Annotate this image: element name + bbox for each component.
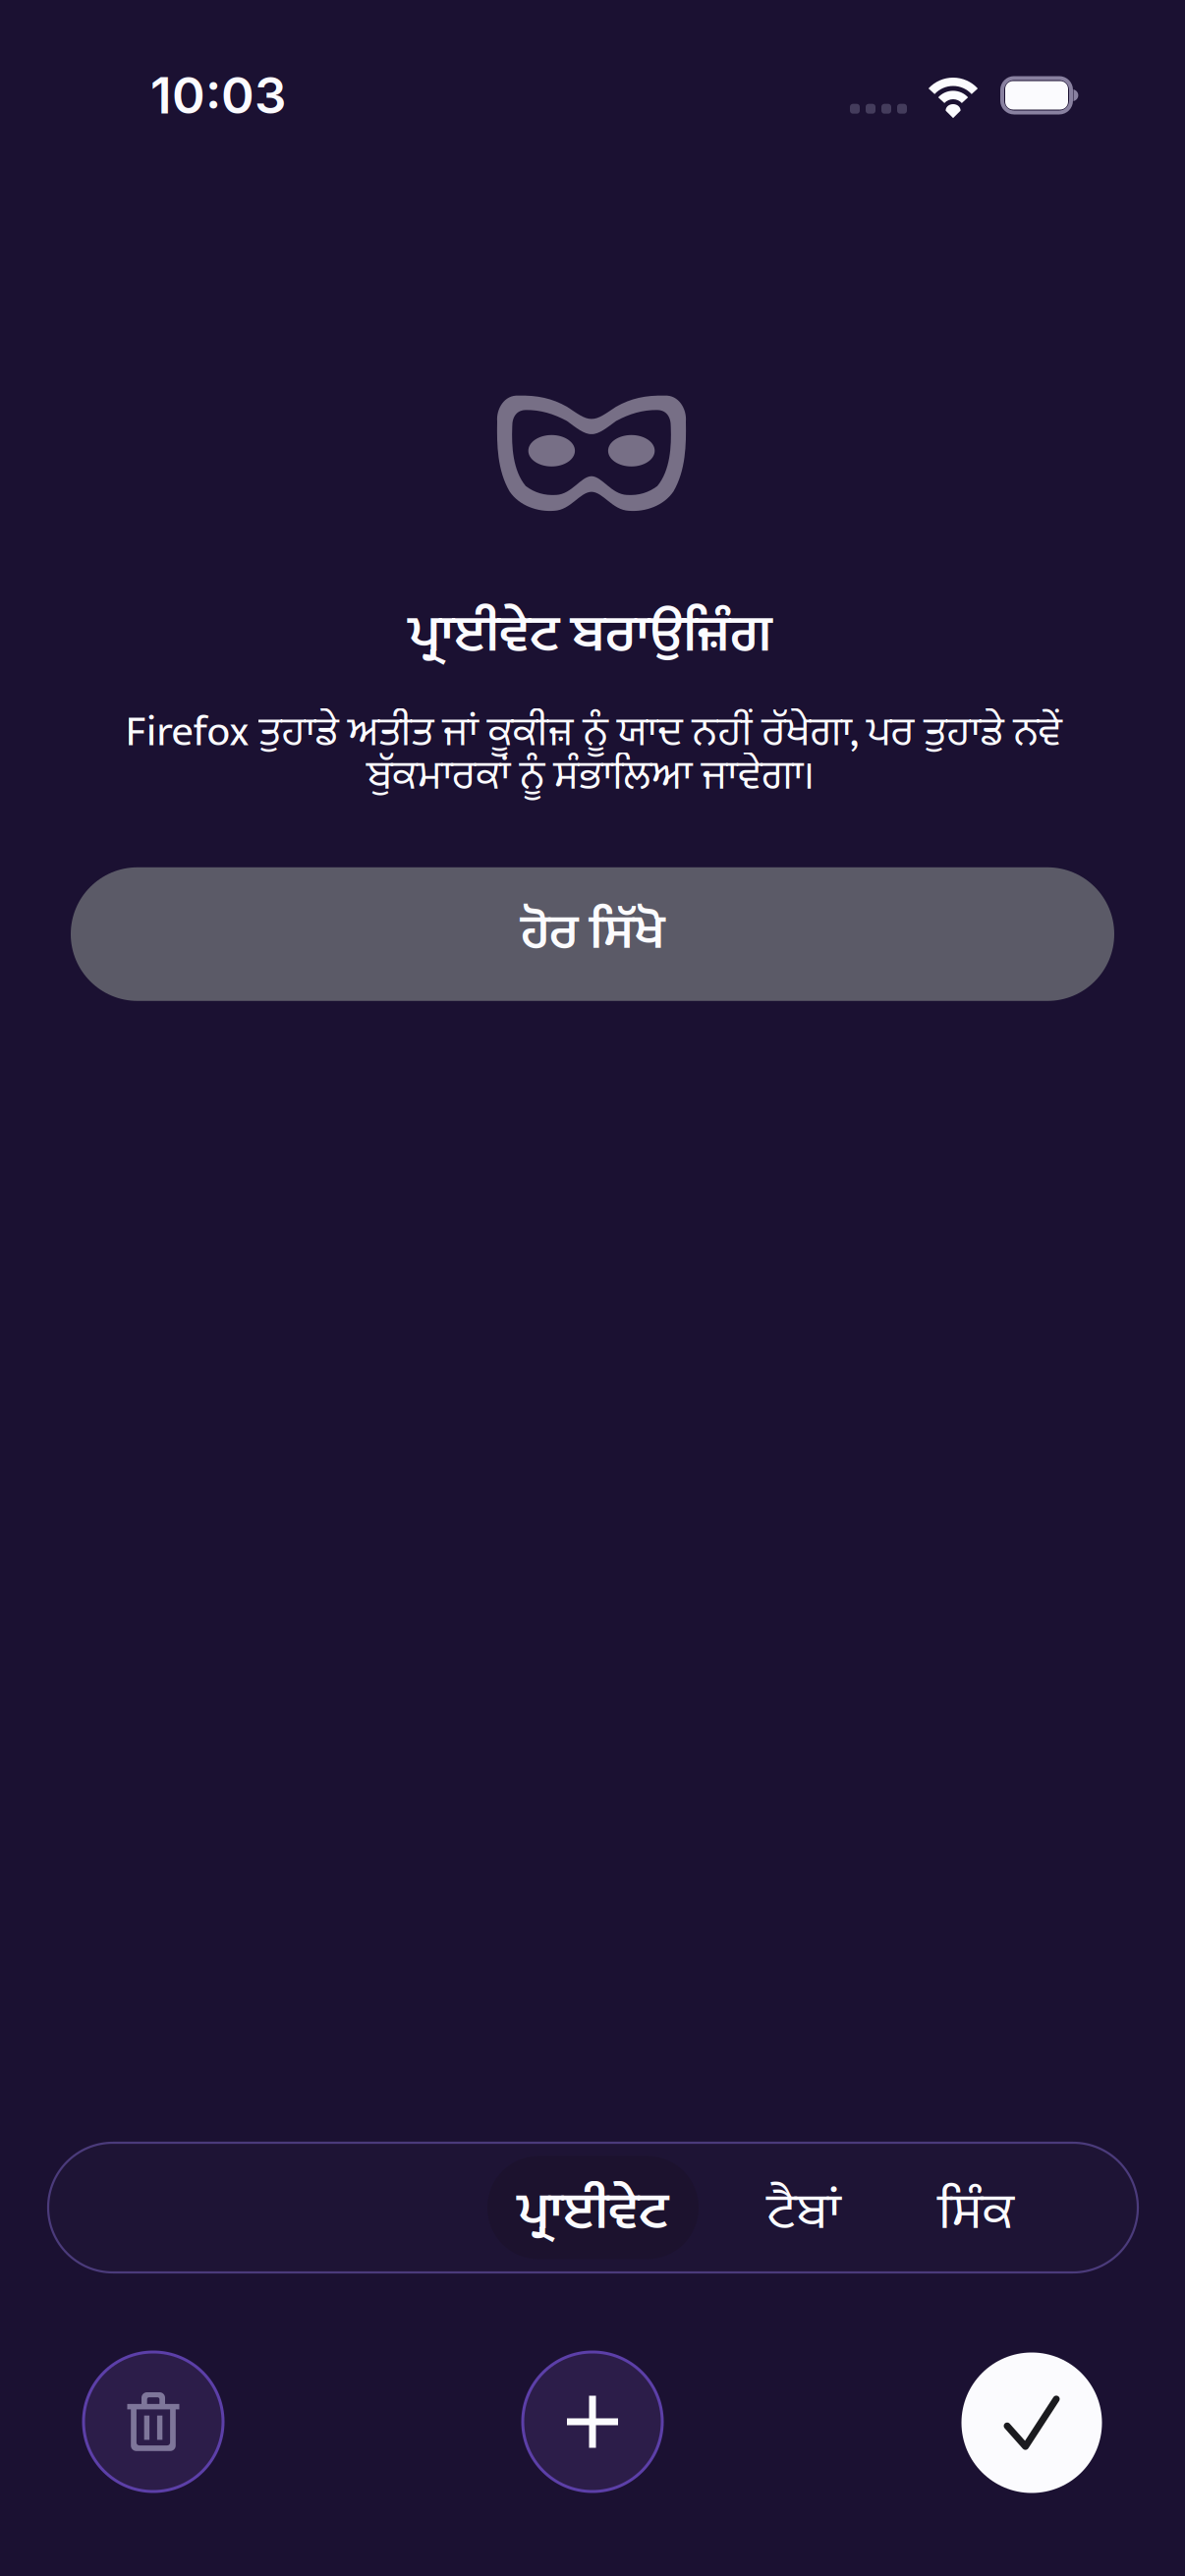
- button[interactable]: ਟੈਬਾਂ: [735, 2156, 873, 2259]
- staticText: ਪ੍ਰਾਈਵੇਟ: [518, 2166, 668, 2257]
- staticText: ਬੁੱਕਮਾਰਕਾਂ ਨੂੰ ਸੰਭਾਲਿਆ ਜਾਵੇਗਾ।: [367, 740, 816, 812]
- button[interactable]: ਪ੍ਰਾਈਵੇਟ: [487, 2156, 699, 2259]
- staticText: ਸਿੰਕ: [938, 2166, 1014, 2257]
- staticText: ਪ੍ਰਾਈਵੇਟ ਬਰਾਉਜ਼ਿੰਗ: [409, 589, 772, 680]
- button[interactable]: Done: [961, 2352, 1102, 2493]
- staticText: 10:03: [150, 65, 286, 126]
- button[interactable]: ਸਿੰਕ: [907, 2156, 1044, 2259]
- staticText: ਟੈਬਾਂ: [767, 2166, 841, 2257]
- button[interactable]: Close all private tabs: [84, 2352, 223, 2492]
- button[interactable]: Add new private tab: [523, 2352, 662, 2492]
- staticText: ਹੋਰ ਸਿੱਖੋ: [521, 889, 664, 975]
- staticText: Firefox ਤੁਹਾਡੇ ਅਤੀਤ ਜਾਂ ਕੂਕੀਜ਼ ਨੂੰ ਯਾਦ ਨ…: [125, 696, 1062, 768]
- button[interactable]: ਹੋਰ ਸਿੱਖੋ: [71, 867, 1114, 1001]
